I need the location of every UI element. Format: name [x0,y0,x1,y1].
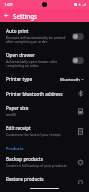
other: Paper size [77,108,84,115]
button[interactable]: Bluetooth [60,76,84,82]
button[interactable]: Printer type [0,72,89,86]
staticText: Printer type [6,76,33,82]
staticText: Bluetooth [60,76,80,82]
staticText: mm80 [6,112,17,117]
button[interactable]: Edit receipt [0,121,89,141]
button[interactable]: Auto print [0,24,89,48]
other: Backup products [77,159,84,166]
staticText: Auto print [6,28,29,34]
button[interactable]: Back [0,9,13,22]
staticText: Products [6,146,24,151]
button[interactable]: Restore products [0,172,89,184]
button[interactable]: Printer bluetooth address [0,86,89,101]
button[interactable]: Backup products [0,152,89,172]
staticText: Receipts will automatically be printed a… [6,35,69,44]
button[interactable]: Toggle [72,57,84,64]
other: Restore products [77,179,84,184]
staticText: Restore products [6,176,44,182]
staticText: Automatically open drawer after completi… [6,59,69,68]
other: Bluetooth address [77,90,84,97]
button[interactable]: Toggle [72,33,84,40]
staticText: Backup products [6,156,43,162]
button[interactable]: Paper size [0,101,89,121]
staticText: Edit receipt [6,125,31,131]
staticText: Customize the look of your receipt. [6,132,62,137]
staticText: Open drawer [6,52,35,58]
button[interactable]: Open drawer [0,48,89,72]
staticText: Printer bluetooth address [6,91,63,97]
staticText: Paper size [6,105,29,111]
other: Edit receipt [77,128,84,135]
staticText: 1:09 [4,2,13,8]
staticText: Creates a full backup of your products. [6,163,68,168]
staticText: Settings [13,12,38,20]
